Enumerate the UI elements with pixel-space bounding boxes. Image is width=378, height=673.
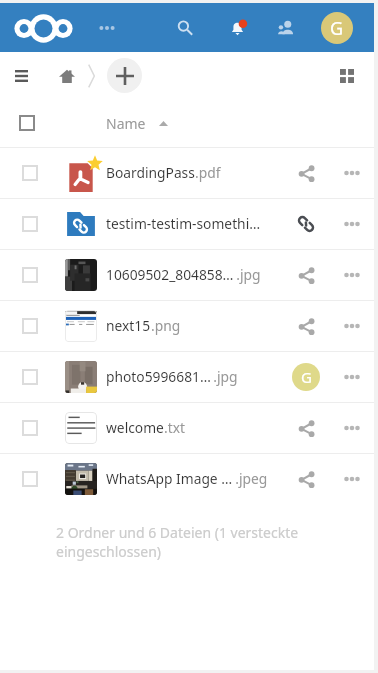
button[interactable]: More options bbox=[335, 253, 369, 297]
staticText: next15 bbox=[106, 316, 151, 335]
button[interactable]: More options bbox=[335, 202, 369, 246]
staticText: .pdf bbox=[195, 163, 221, 182]
button[interactable]: Select bbox=[0, 147, 374, 198]
button[interactable]: Select bbox=[22, 267, 38, 283]
button[interactable]: Nextcloud home bbox=[15, 8, 72, 48]
button[interactable]: More options bbox=[335, 406, 369, 450]
button[interactable]: Share bbox=[288, 304, 324, 348]
button[interactable]: Share bbox=[288, 355, 324, 399]
button[interactable]: Select bbox=[22, 216, 38, 232]
button[interactable]: Select bbox=[22, 165, 38, 181]
button[interactable]: Contacts bbox=[266, 6, 306, 50]
staticText: testim-testim-somethi… bbox=[106, 214, 261, 233]
button[interactable]: Select bbox=[22, 471, 38, 487]
staticText: photo5996681… bbox=[106, 367, 211, 386]
button[interactable]: Select bbox=[0, 198, 374, 249]
button[interactable]: Select bbox=[22, 420, 38, 436]
button[interactable]: Select bbox=[0, 249, 374, 300]
button[interactable]: Share bbox=[288, 151, 324, 195]
button[interactable]: Account bbox=[321, 12, 353, 44]
button[interactable]: Select bbox=[0, 453, 374, 504]
button[interactable]: Search bbox=[165, 6, 205, 50]
staticText: 2 Ordner und 6 Dateien (1 versteckte ein… bbox=[56, 523, 324, 561]
staticText: BoardingPass bbox=[106, 163, 195, 182]
staticText: .png bbox=[151, 316, 181, 335]
button[interactable]: More options bbox=[335, 355, 369, 399]
button[interactable]: Home bbox=[53, 62, 81, 90]
staticText: .jpg bbox=[211, 367, 238, 386]
staticText: WhatsApp Image … bbox=[106, 469, 233, 488]
staticText: G bbox=[301, 367, 312, 387]
button[interactable]: Apps bbox=[90, 8, 124, 48]
button[interactable]: Share bbox=[288, 457, 324, 501]
button[interactable]: Select all bbox=[19, 115, 35, 131]
staticText: .jpeg bbox=[233, 469, 268, 488]
button[interactable]: More options bbox=[335, 304, 369, 348]
button[interactable]: Name bbox=[106, 114, 168, 133]
button[interactable]: Select bbox=[22, 369, 38, 385]
staticText: welcome bbox=[106, 418, 164, 437]
button[interactable]: Share bbox=[288, 202, 324, 246]
staticText: G bbox=[330, 16, 344, 41]
button[interactable]: Notifications bbox=[217, 6, 257, 50]
button[interactable]: More options bbox=[335, 151, 369, 195]
button[interactable]: Share bbox=[288, 406, 324, 450]
button[interactable]: Select bbox=[0, 402, 374, 453]
button[interactable]: Select bbox=[0, 351, 374, 402]
button[interactable]: Grid view bbox=[332, 61, 362, 91]
button[interactable]: More options bbox=[335, 457, 369, 501]
staticText: Name bbox=[106, 114, 146, 133]
staticText: .jpg bbox=[234, 265, 261, 284]
button[interactable]: Menu bbox=[5, 60, 37, 92]
button[interactable]: Select bbox=[0, 300, 374, 351]
staticText: .txt bbox=[164, 418, 185, 437]
button[interactable]: Share bbox=[288, 253, 324, 297]
button[interactable]: Add bbox=[107, 58, 142, 93]
staticText: 10609502_804858… bbox=[106, 265, 234, 284]
button[interactable]: Select bbox=[22, 318, 38, 334]
